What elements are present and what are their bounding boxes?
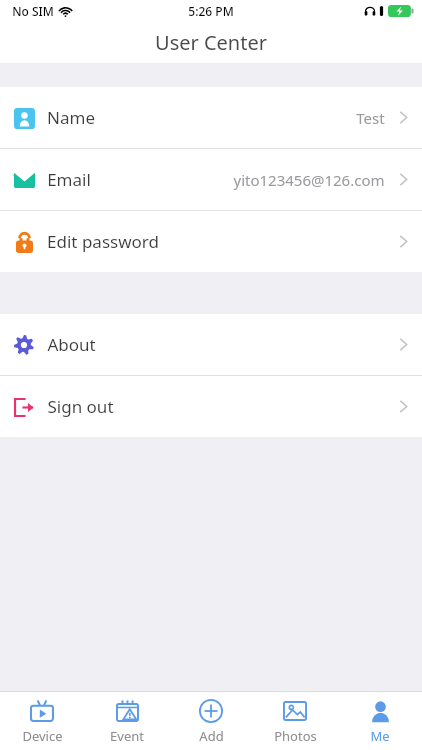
staticText: Test xyxy=(356,108,385,128)
staticText: No SIM xyxy=(12,3,54,19)
other: Event xyxy=(116,700,139,722)
staticText: Name xyxy=(47,106,95,129)
staticText: Me xyxy=(370,727,390,745)
other: Photos xyxy=(283,701,307,721)
staticText: Device xyxy=(22,727,63,745)
staticText: User Center xyxy=(155,29,267,56)
staticText: Edit password xyxy=(47,230,159,253)
button[interactable]: Event xyxy=(85,693,169,750)
button[interactable]: Email xyxy=(0,149,422,210)
button[interactable]: Photos xyxy=(253,693,337,750)
staticText: Event xyxy=(110,727,144,745)
button[interactable]: Device xyxy=(0,693,84,750)
staticText: Photos xyxy=(274,727,317,745)
staticText: Email xyxy=(47,168,91,191)
button[interactable]: Me xyxy=(338,693,422,750)
staticText: 5:26 PM xyxy=(188,3,234,19)
staticText: yito123456@126.com xyxy=(233,170,385,190)
staticText: About xyxy=(47,333,96,356)
staticText: Add xyxy=(199,727,224,745)
button[interactable]: Add xyxy=(169,693,253,750)
button[interactable]: Edit password xyxy=(0,211,422,272)
button[interactable]: Name xyxy=(0,87,422,148)
button[interactable]: Sign out xyxy=(0,376,422,437)
other: Me xyxy=(370,701,391,722)
other: Add xyxy=(199,699,223,723)
staticText: Sign out xyxy=(47,395,114,418)
button[interactable]: About xyxy=(0,314,422,375)
other: Device xyxy=(30,700,54,722)
